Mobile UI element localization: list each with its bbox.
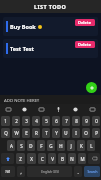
button[interactable]: 9 bbox=[82, 116, 90, 126]
button[interactable]: P bbox=[92, 128, 100, 138]
button[interactable]: F bbox=[37, 140, 45, 151]
button[interactable]: Shift bbox=[1, 153, 14, 164]
button[interactable]: X bbox=[27, 153, 36, 164]
staticText: 4 bbox=[35, 118, 38, 124]
staticText: R bbox=[35, 130, 38, 136]
staticText: H bbox=[59, 143, 63, 149]
staticText: X bbox=[30, 156, 33, 162]
staticText: 2 bbox=[15, 118, 18, 124]
staticText: Search bbox=[87, 170, 98, 174]
button[interactable]: M bbox=[78, 153, 86, 164]
staticText: B bbox=[61, 156, 64, 162]
button[interactable]: 1 bbox=[1, 116, 10, 126]
staticText: LIST TODO bbox=[34, 3, 67, 10]
button[interactable]: Add note bbox=[86, 82, 97, 93]
button[interactable]: English (US) bbox=[27, 166, 72, 177]
button[interactable]: V bbox=[48, 153, 56, 164]
staticText: 0 bbox=[95, 118, 98, 124]
button[interactable]: R bbox=[32, 128, 40, 138]
staticText: 9 bbox=[85, 118, 88, 124]
button[interactable]: D bbox=[27, 140, 35, 151]
staticText: 7 bbox=[65, 118, 68, 124]
button[interactable]: B bbox=[58, 153, 66, 164]
staticText: Q bbox=[4, 130, 8, 136]
button[interactable]: Search bbox=[84, 166, 100, 177]
staticText: 6 bbox=[55, 118, 58, 124]
staticText: W bbox=[14, 130, 19, 136]
button[interactable]: H bbox=[57, 140, 65, 151]
staticText: V bbox=[51, 156, 54, 162]
button[interactable]: 5 bbox=[42, 116, 50, 126]
staticText: G bbox=[49, 143, 53, 149]
button[interactable]: Test Test bbox=[3, 39, 98, 58]
button[interactable]: O bbox=[82, 128, 90, 138]
staticText: U bbox=[64, 130, 68, 136]
button[interactable]: 3 bbox=[22, 116, 30, 126]
button[interactable]: Emoji bbox=[16, 104, 33, 115]
staticText: T bbox=[45, 130, 48, 136]
button[interactable]: 7 bbox=[62, 116, 70, 126]
button[interactable]: N bbox=[68, 153, 76, 164]
button[interactable]: J bbox=[67, 140, 75, 151]
button[interactable]: Q bbox=[1, 128, 10, 138]
staticText: F bbox=[40, 143, 43, 149]
staticText: Delete bbox=[78, 42, 92, 47]
button[interactable]: S bbox=[17, 140, 25, 151]
staticText: S bbox=[20, 143, 23, 149]
button[interactable]: ADD NOTE HERE!! bbox=[0, 95, 101, 104]
button[interactable]: G bbox=[47, 140, 55, 151]
button[interactable]: C bbox=[38, 153, 46, 164]
button[interactable]: . bbox=[74, 166, 82, 177]
staticText: A bbox=[10, 143, 13, 149]
button[interactable]: ?#1 bbox=[1, 166, 15, 177]
staticText: L bbox=[90, 143, 93, 149]
button[interactable]: 8 bbox=[72, 116, 80, 126]
staticText: 8 bbox=[75, 118, 78, 124]
button[interactable]: Delete bbox=[75, 19, 95, 26]
button[interactable]: T bbox=[42, 128, 50, 138]
button[interactable]: A bbox=[7, 140, 15, 151]
button[interactable]: Buy Book bbox=[3, 17, 98, 36]
staticText: ?#1 bbox=[5, 169, 11, 174]
staticText: Delete bbox=[78, 20, 92, 25]
staticText: English (US) bbox=[41, 170, 59, 174]
button[interactable]: Z bbox=[16, 153, 25, 164]
button[interactable]: Backspace bbox=[88, 153, 100, 164]
button[interactable]: U bbox=[62, 128, 70, 138]
button[interactable]: Sticker bbox=[33, 104, 50, 115]
button[interactable]: Y bbox=[52, 128, 60, 138]
button[interactable]: K bbox=[77, 140, 85, 151]
staticText: E bbox=[25, 130, 28, 136]
button[interactable]: Delete bbox=[75, 41, 95, 48]
button[interactable]: Settings bbox=[67, 104, 84, 115]
button[interactable]: Voice input bbox=[50, 104, 67, 115]
staticText: D bbox=[29, 143, 33, 149]
button[interactable]: W bbox=[12, 128, 20, 138]
button[interactable]: 2 bbox=[12, 116, 20, 126]
staticText: , bbox=[20, 169, 22, 175]
button[interactable]: , bbox=[17, 166, 25, 177]
staticText: 1 bbox=[4, 118, 7, 124]
button[interactable]: 6 bbox=[52, 116, 60, 126]
staticText: I bbox=[75, 130, 77, 136]
staticText: K bbox=[80, 143, 83, 149]
button[interactable]: I bbox=[72, 128, 80, 138]
staticText: . bbox=[77, 169, 79, 175]
staticText: O bbox=[84, 130, 88, 136]
button[interactable]: L bbox=[87, 140, 95, 151]
staticText: Z bbox=[19, 156, 22, 162]
staticText: Test Test bbox=[10, 45, 34, 52]
staticText: P bbox=[95, 130, 98, 136]
button[interactable]: E bbox=[22, 128, 30, 138]
staticText: 3 bbox=[25, 118, 28, 124]
button[interactable]: 4 bbox=[32, 116, 40, 126]
staticText: M bbox=[80, 156, 85, 162]
staticText: 5 bbox=[45, 118, 48, 124]
button[interactable]: GIF bbox=[0, 104, 16, 115]
button[interactable]: More bbox=[84, 104, 101, 115]
staticText: N bbox=[70, 156, 74, 162]
button[interactable]: 0 bbox=[92, 116, 100, 126]
staticText: Buy Book bbox=[10, 23, 36, 30]
staticText: ADD NOTE HERE!! bbox=[4, 97, 40, 103]
staticText: Y bbox=[55, 130, 58, 136]
